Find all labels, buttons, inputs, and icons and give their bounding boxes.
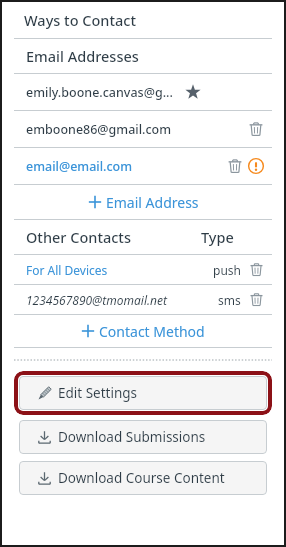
button[interactable]: Delete	[249, 262, 264, 277]
staticText: Contact Method	[99, 322, 205, 341]
staticText: Download Submissions	[58, 428, 206, 446]
staticText: Ways to Contact	[24, 10, 136, 30]
staticText: Type	[201, 227, 234, 247]
staticText: emboone86@gmail.com	[26, 121, 248, 138]
staticText: 1234567890@tmomail.net	[26, 292, 218, 308]
button[interactable]: Download Course Content	[19, 461, 267, 495]
button[interactable]: For All Devices	[14, 255, 272, 284]
button[interactable]: Contact Method	[14, 315, 272, 347]
staticText: Email Address	[106, 193, 199, 212]
staticText: Email Addresses	[26, 46, 139, 66]
staticText: email@email.com	[26, 158, 227, 175]
button[interactable]: email@email.com	[14, 148, 272, 184]
button[interactable]: Delete	[248, 121, 264, 137]
button[interactable]: 1234567890@tmomail.net	[14, 285, 272, 314]
staticText: sms	[218, 292, 241, 308]
button[interactable]: Email Address	[14, 185, 272, 219]
staticText: push	[213, 262, 241, 278]
button[interactable]: Delete	[227, 158, 243, 174]
other: Default email	[185, 84, 201, 100]
staticText: emily.boone.canvas@g...	[26, 84, 173, 101]
staticText: Other Contacts	[26, 227, 201, 247]
button[interactable]: Delete	[249, 292, 264, 307]
staticText: Edit Settings	[58, 384, 138, 402]
staticText: Download Course Content	[58, 469, 225, 487]
button[interactable]: Download Submissions	[19, 420, 267, 454]
button[interactable]: emily.boone.canvas@g...	[14, 74, 272, 110]
button[interactable]: Edit Settings	[19, 376, 267, 410]
staticText: For All Devices	[26, 262, 213, 278]
button[interactable]: Unconfirmed	[248, 158, 264, 174]
button[interactable]: emboone86@gmail.com	[14, 111, 272, 147]
